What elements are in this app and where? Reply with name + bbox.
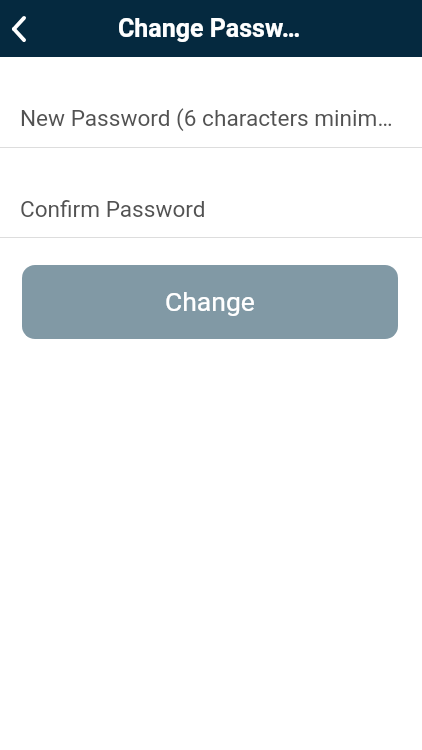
staticText: Confirm Password — [20, 196, 206, 222]
button[interactable]: New Password (6 characters minim… — [0, 57, 422, 147]
button[interactable]: Confirm Password — [0, 148, 422, 237]
button[interactable]: Back — [0, 0, 38, 57]
staticText: Change — [165, 286, 255, 317]
button[interactable]: Change — [22, 265, 398, 339]
staticText: Change Passw… — [118, 14, 301, 43]
staticText: New Password (6 characters minim… — [20, 105, 393, 131]
